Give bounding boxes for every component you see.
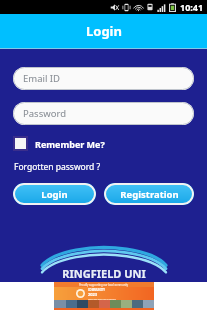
button[interactable]: Registration xyxy=(104,183,194,205)
staticText: Remember Me? xyxy=(35,138,105,150)
staticText: Find out who we support xyxy=(88,297,116,300)
staticText: Registration xyxy=(120,188,179,201)
staticText: Proudly supporting our local community xyxy=(79,283,129,287)
staticText: Email ID xyxy=(23,72,61,85)
staticText: Password xyxy=(23,107,66,120)
button[interactable]: Email ID xyxy=(13,67,194,90)
button[interactable]: Advertisement xyxy=(54,282,154,310)
button[interactable]: Forgotten password ? xyxy=(14,161,101,173)
button[interactable]: Login xyxy=(13,183,96,205)
button[interactable]: Password xyxy=(13,102,194,125)
staticText: Login xyxy=(86,22,122,40)
staticText: RINGFIELD UNI xyxy=(62,266,146,281)
staticText: 10:41 xyxy=(180,1,204,13)
staticText: COMMUNITY xyxy=(88,288,105,292)
staticText: 2023 xyxy=(88,292,98,297)
button[interactable]: Remember Me? xyxy=(13,136,105,151)
staticText: Login xyxy=(41,188,68,201)
